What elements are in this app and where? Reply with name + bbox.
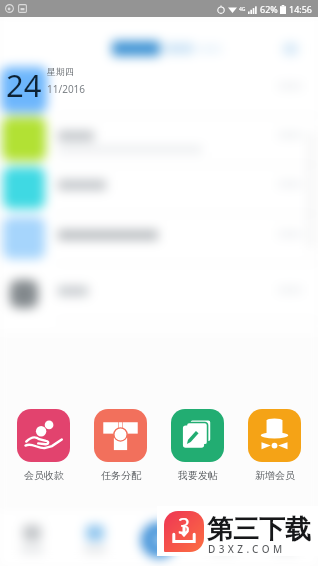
staticText: 星期四 [47, 66, 74, 77]
staticText: 14:56 [289, 3, 313, 15]
other: 我要发帖 [171, 409, 224, 462]
staticText: D3XZ.COM [208, 542, 286, 556]
staticText: 新增会员 [255, 469, 295, 482]
button[interactable]: 会员收款 [15, 409, 72, 482]
staticText: 3 [178, 512, 191, 541]
button[interactable]: 新增会员 [246, 409, 303, 482]
other: 新增会员 [248, 409, 301, 462]
button[interactable]: 任务分配 [92, 409, 149, 482]
staticText: 我要发帖 [178, 469, 218, 482]
button[interactable]: 我要发帖 [169, 409, 226, 482]
other: 任务分配 [94, 409, 147, 462]
other: 会员收款 [17, 409, 70, 462]
staticText: 4G [239, 6, 246, 13]
staticText: 会员收款 [24, 469, 64, 482]
staticText: 11/2016 [47, 82, 86, 96]
staticText: 62% [260, 3, 278, 15]
staticText: 任务分配 [101, 469, 141, 482]
staticText: 24 [6, 64, 42, 106]
staticText: 第三下载 [207, 513, 311, 546]
